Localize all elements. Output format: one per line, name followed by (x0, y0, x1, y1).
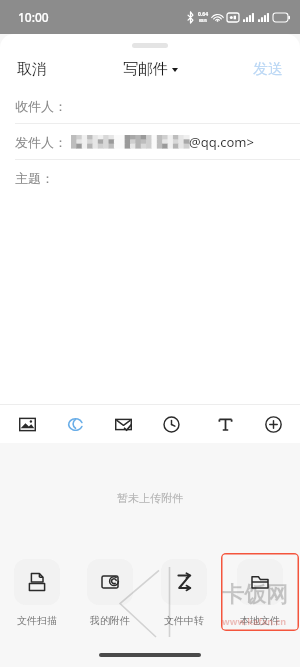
button[interactable]: Undo (60, 409, 90, 439)
button[interactable]: Insert image (12, 409, 42, 439)
staticText: 主题： (15, 170, 54, 186)
staticText: 0.64 (198, 11, 208, 18)
button[interactable]: 发件人： (0, 124, 300, 160)
staticText: 卡饭网 (222, 581, 288, 609)
button[interactable]: Schedule send (156, 409, 186, 439)
button[interactable]: 发送 (236, 51, 300, 88)
staticText: www.kafan.cn (222, 615, 286, 627)
button[interactable]: 写邮件 (115, 56, 186, 83)
staticText: 发件人： (15, 134, 67, 150)
button[interactable]: 我的附件 (74, 553, 146, 633)
staticText: 暂未上传附件 (117, 491, 183, 505)
staticText: @qq.com> (189, 133, 254, 151)
button[interactable]: 主题： (0, 160, 300, 195)
button[interactable]: 文件扫描 (1, 553, 73, 633)
button[interactable]: Text format (210, 409, 240, 439)
button[interactable]: 取消 (0, 51, 64, 88)
button[interactable]: 文件中转 (148, 553, 220, 633)
staticText: 文件扫描 (17, 614, 57, 627)
button[interactable]: Add more (258, 409, 288, 439)
button[interactable]: Mail receipt (108, 409, 138, 439)
button[interactable]: 本地文件 (224, 553, 296, 633)
staticText: KB/S (199, 18, 208, 23)
button[interactable]: 收件人： (0, 88, 300, 124)
staticText: 我的附件 (90, 614, 130, 627)
staticText: 文件中转 (164, 614, 204, 627)
staticText: 取消 (17, 60, 47, 79)
staticText: 写邮件 (123, 60, 168, 79)
staticText: 发送 (253, 60, 283, 79)
staticText: 10:00 (18, 9, 49, 25)
staticText: 收件人： (15, 98, 67, 114)
staticText: 本地文件 (240, 614, 280, 627)
